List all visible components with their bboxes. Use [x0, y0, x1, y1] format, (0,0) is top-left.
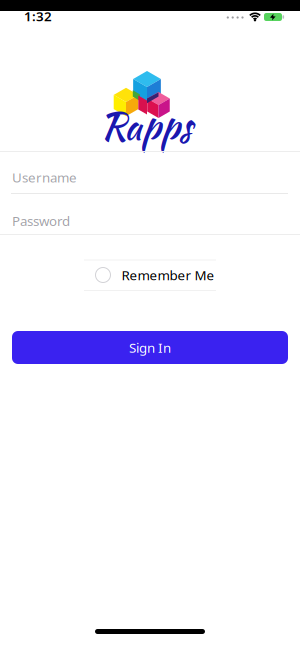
staticText: 1:32 — [24, 7, 52, 25]
staticText: Username — [12, 168, 77, 186]
button[interactable]: Sign In — [12, 331, 288, 364]
button[interactable]: Username — [0, 152, 300, 193]
staticText: Sign In — [129, 339, 171, 356]
staticText: Rapps — [100, 99, 192, 153]
button[interactable]: Password — [0, 194, 300, 234]
staticText: Password — [12, 212, 70, 230]
staticText: Remember Me — [121, 266, 214, 284]
button[interactable]: Remember Me — [95, 260, 214, 290]
